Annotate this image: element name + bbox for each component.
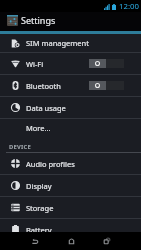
- button[interactable]: Back: [17, 232, 53, 250]
- button[interactable]: Wi-Fi: [0, 53, 141, 74]
- staticText: SIM management: [26, 38, 89, 48]
- button[interactable]: Home: [53, 232, 89, 250]
- button[interactable]: More...: [0, 119, 141, 141]
- staticText: 12:00: [119, 1, 139, 12]
- staticText: Battery: [26, 225, 52, 235]
- staticText: More...: [26, 123, 51, 133]
- button[interactable]: [89, 81, 124, 90]
- staticText: Data usage: [26, 103, 66, 113]
- button[interactable]: Display: [0, 175, 141, 196]
- staticText: Settings: [21, 14, 56, 26]
- staticText: Bluetooth: [26, 81, 61, 91]
- button[interactable]: Bluetooth: [0, 75, 141, 96]
- staticText: Storage: [26, 203, 54, 213]
- staticText: DEVICE: [9, 143, 31, 151]
- button[interactable]: [89, 59, 124, 68]
- staticText: Audio profiles: [26, 159, 75, 169]
- button[interactable]: SIM management: [0, 34, 141, 52]
- button[interactable]: Recent apps: [89, 232, 125, 250]
- staticText: Wi-Fi: [26, 59, 44, 69]
- button[interactable]: Data usage: [0, 97, 141, 118]
- staticText: Display: [26, 181, 52, 191]
- button[interactable]: Audio profiles: [0, 153, 141, 174]
- button[interactable]: Storage: [0, 197, 141, 218]
- button[interactable]: Settings: [0, 12, 141, 31]
- button[interactable]: Battery: [0, 219, 141, 240]
